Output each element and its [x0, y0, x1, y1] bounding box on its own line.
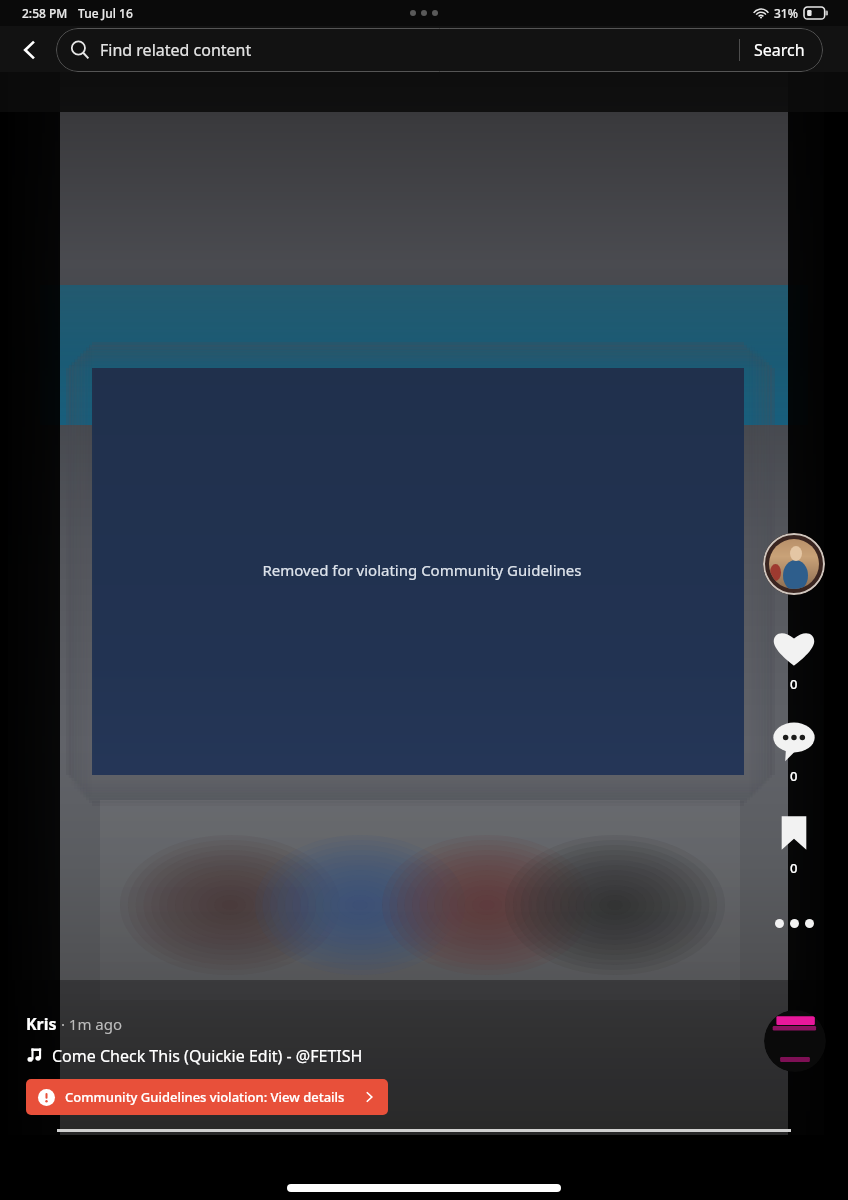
- button[interactable]: Kris: [26, 1013, 57, 1035]
- button[interactable]: Back: [6, 26, 54, 74]
- staticText: Tue Jul 16: [78, 5, 133, 21]
- button[interactable]: Community Guidelines violation: View det…: [26, 1079, 388, 1115]
- button[interactable]: Come Check This (Quickie Edit) - @FETISH: [26, 1045, 363, 1067]
- staticText: Community Guidelines violation: View det…: [65, 1088, 345, 1106]
- staticText: 31%: [774, 5, 798, 21]
- staticText: 0: [790, 675, 798, 693]
- button[interactable]: Profile: [763, 533, 825, 595]
- button[interactable]: More options: [772, 901, 816, 945]
- button[interactable]: Comments: [766, 717, 822, 787]
- staticText: 0: [790, 767, 798, 785]
- button[interactable]: Find related content: [56, 28, 823, 72]
- staticText: Come Check This (Quickie Edit) - @FETISH: [52, 1045, 363, 1067]
- button[interactable]: Search: [740, 33, 809, 67]
- staticText: · 1m ago: [57, 1014, 123, 1034]
- staticText: Removed for violating Community Guidelin…: [90, 560, 754, 580]
- staticText: Search: [754, 39, 805, 61]
- staticText: 2:58 PM: [22, 5, 68, 21]
- staticText: 0: [790, 859, 798, 877]
- button[interactable]: Save: [766, 809, 822, 879]
- button[interactable]: Like: [766, 625, 822, 695]
- staticText: Find related content: [100, 39, 252, 61]
- button[interactable]: Music album art: [764, 1010, 826, 1072]
